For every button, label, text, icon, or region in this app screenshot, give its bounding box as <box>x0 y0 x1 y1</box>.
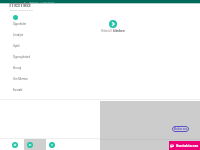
staticText: Hitta till <box>101 29 113 33</box>
button[interactable]: Menu marker <box>13 15 18 20</box>
staticText: Kontakta oss <box>176 143 199 148</box>
staticText: Kirurgi <box>13 66 22 70</box>
button[interactable]: Ögonsjukvård <box>13 51 61 62</box>
button[interactable]: Next <box>109 20 117 28</box>
button[interactable]: Linsbyte <box>13 29 61 40</box>
staticText: Optik <box>13 44 20 48</box>
button[interactable]: Kontakt <box>13 84 61 95</box>
button[interactable]: Chat <box>27 142 33 148</box>
button[interactable]: Öppettider <box>13 18 61 29</box>
staticText: Boka nu <box>174 127 187 131</box>
staticText: kliniken <box>113 29 125 33</box>
button[interactable]: Information <box>49 142 55 148</box>
button[interactable]: Glasses <box>12 142 18 148</box>
staticText: ÖGONCENTER <box>10 8 34 11</box>
staticText: Linsbyte <box>13 33 24 37</box>
button[interactable]: Om Memira <box>13 73 61 84</box>
staticText: Boka tid | Hitta klinik <box>29 0 54 3</box>
staticText: Kontakt <box>13 88 23 92</box>
staticText: Ögonsjukvård <box>13 55 31 59</box>
button[interactable]: Boka nu <box>172 126 189 132</box>
button[interactable]: Optik <box>13 40 61 51</box>
staticText: Öppettider <box>13 22 27 26</box>
staticText: memira <box>9 0 30 9</box>
button[interactable]: Kontakta oss <box>169 141 200 150</box>
button[interactable]: Kirurgi <box>13 62 61 73</box>
staticText: Om Memira <box>13 77 28 81</box>
